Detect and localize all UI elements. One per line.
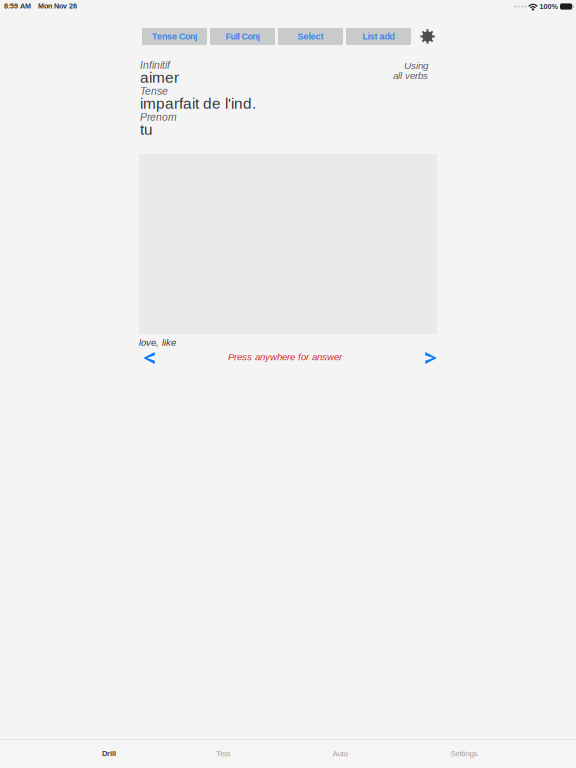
staticText: Press anywhere for answer <box>228 352 342 362</box>
button[interactable]: Full Conj <box>210 28 275 45</box>
button[interactable]: Select <box>278 28 343 45</box>
staticText: Drill <box>102 749 116 758</box>
staticText: love, like <box>139 337 176 348</box>
staticText: Full Conj <box>225 31 259 41</box>
staticText: Settings <box>450 749 477 758</box>
button[interactable]: Settings <box>420 29 435 44</box>
staticText: Infinitif <box>140 59 170 71</box>
staticText: Auto <box>332 749 347 758</box>
staticText: 8:59 AM <box>4 2 31 10</box>
staticText: 100% <box>540 2 558 10</box>
button[interactable]: Next <box>418 346 444 370</box>
staticText: Tense <box>140 85 168 97</box>
button[interactable]: Test <box>183 739 263 768</box>
button[interactable]: Previous <box>136 346 162 370</box>
staticText: Prenom <box>140 111 177 123</box>
staticText: imparfait de l'ind. <box>140 95 256 112</box>
button[interactable]: Press anywhere for answer <box>217 345 353 369</box>
staticText: tu <box>140 121 153 138</box>
button[interactable]: Tense Conj <box>142 28 207 45</box>
button[interactable]: List add <box>346 28 411 45</box>
button[interactable]: Auto <box>300 739 380 768</box>
staticText: aimer <box>140 69 179 86</box>
staticText: List add <box>362 31 394 41</box>
button[interactable]: Drill <box>69 739 149 768</box>
staticText: Using <box>404 60 428 71</box>
staticText: Test <box>216 749 230 758</box>
staticText: Mon Nov 26 <box>38 2 77 10</box>
staticText: Select <box>297 31 323 41</box>
button[interactable]: Settings <box>424 739 504 768</box>
staticText: Tense Conj <box>152 31 197 41</box>
staticText: all verbs <box>393 70 428 81</box>
